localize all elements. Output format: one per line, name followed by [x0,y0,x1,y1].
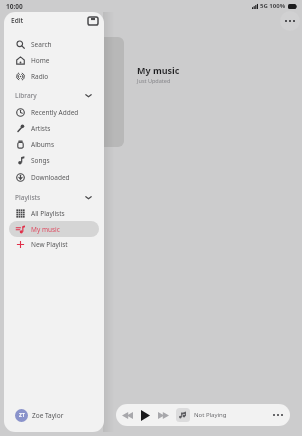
button[interactable]: Albums [9,136,99,152]
button[interactable]: Previous [119,408,136,422]
button[interactable]: Recently Added [9,104,99,120]
staticText: New Playlist [31,240,68,249]
staticText: Artists [31,124,51,133]
staticText: Edit [11,16,24,25]
staticText: Zoe Taylor [32,411,64,420]
staticText: Just Updated [137,77,171,84]
button[interactable]: Play [137,407,154,423]
button[interactable]: Edit [11,16,24,25]
button[interactable]: Playlists [4,189,104,205]
staticText: My music [137,64,180,76]
button[interactable]: Not Playing [176,408,227,422]
button[interactable]: All Playlists [9,205,99,221]
staticText: Songs [31,156,50,165]
staticText: My music [31,225,60,234]
staticText: Radio [31,72,49,81]
button[interactable]: More options [280,11,300,31]
staticText: Search [31,40,52,49]
button[interactable]: Search [9,36,99,52]
staticText: Playlists [15,193,41,202]
button[interactable]: Artists [9,120,99,136]
staticText: 10:00 [6,2,23,11]
button[interactable]: More [269,408,286,422]
button[interactable]: Home [9,52,99,68]
staticText: Library [15,91,37,100]
staticText: ZT [19,412,25,419]
button[interactable]: Next [155,408,172,422]
staticText: Downloaded [31,173,70,182]
staticText: Albums [31,140,55,149]
staticText: All Playlists [31,209,65,218]
button[interactable]: Songs [9,152,99,168]
button[interactable]: New Playlist [9,236,99,252]
staticText: Not Playing [194,411,227,419]
staticText: 5G 100% [260,2,286,10]
button[interactable]: Library [4,87,104,103]
staticText: Home [31,56,50,65]
button[interactable]: ZT [15,407,64,423]
button[interactable]: Radio [9,68,99,84]
staticText: Recently Added [31,108,79,117]
button[interactable]: Downloaded [9,169,99,185]
button[interactable]: My music [9,221,99,237]
button[interactable]: Toggle sidebar [86,14,99,27]
